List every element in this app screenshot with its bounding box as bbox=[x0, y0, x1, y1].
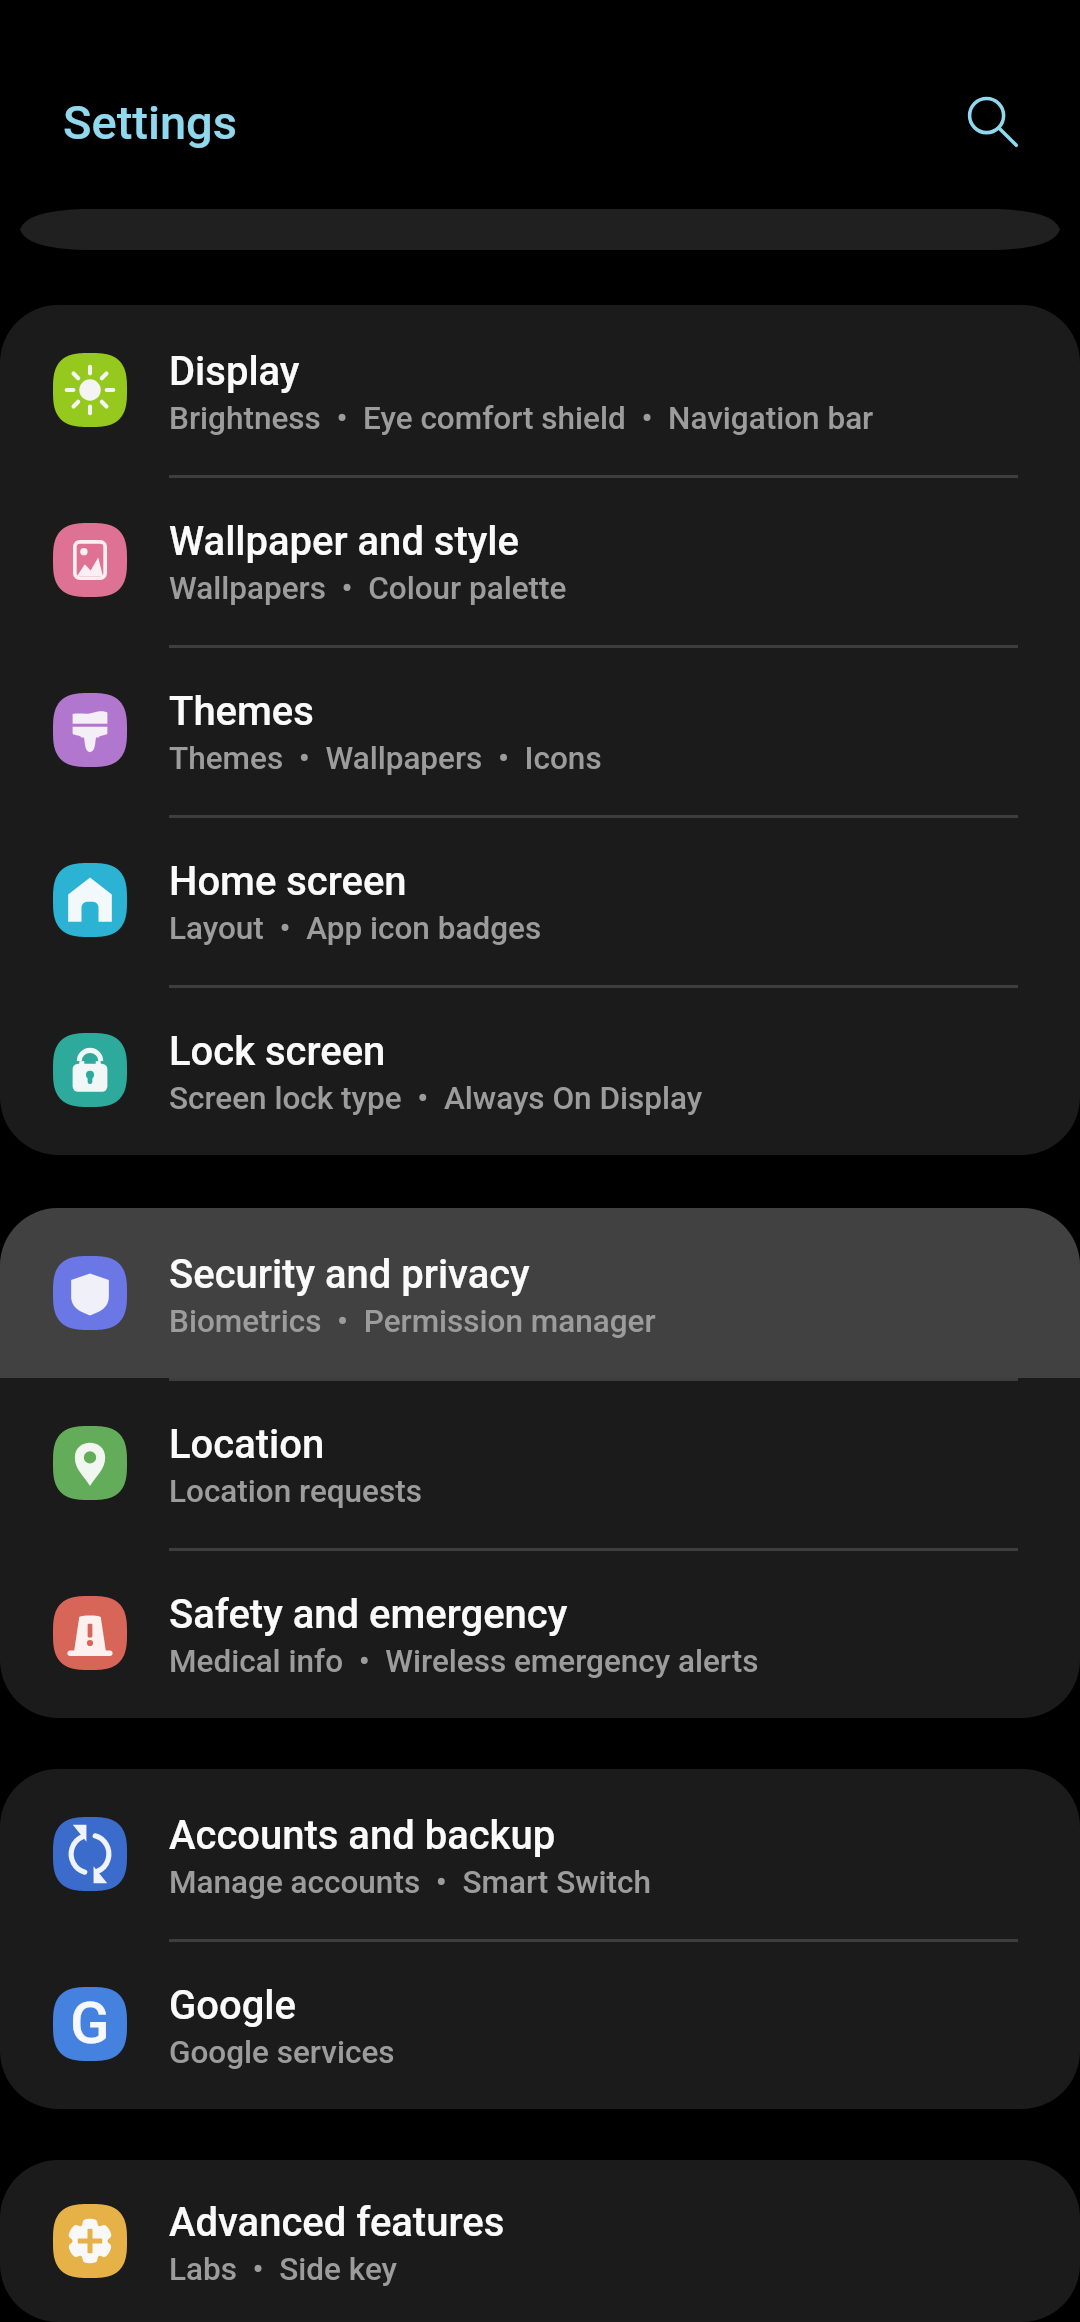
staticText: Security and privacy bbox=[169, 1251, 530, 1298]
button[interactable]: Display bbox=[0, 305, 1080, 475]
staticText: Safety and emergency bbox=[169, 1591, 568, 1638]
staticText: Brightness • Eye comfort shield • Naviga… bbox=[169, 400, 874, 437]
button[interactable] bbox=[0, 209, 1080, 250]
staticText: Medical info • Wireless emergency alerts bbox=[169, 1643, 759, 1680]
staticText: Themes bbox=[169, 688, 314, 735]
staticText: Home screen bbox=[169, 858, 407, 905]
button[interactable]: Search bbox=[944, 73, 1040, 169]
staticText: Accounts and backup bbox=[169, 1812, 556, 1859]
staticText: Manage accounts • Smart Switch bbox=[169, 1864, 652, 1901]
staticText: Google services bbox=[169, 2034, 395, 2071]
staticText: Lock screen bbox=[169, 1028, 386, 1075]
button[interactable]: Wallpaper and style bbox=[0, 475, 1080, 645]
button[interactable]: Home screen bbox=[0, 815, 1080, 985]
button[interactable]: Lock screen bbox=[0, 985, 1080, 1155]
staticText: G bbox=[70, 1989, 110, 2057]
button[interactable]: Safety and emergency bbox=[0, 1548, 1080, 1718]
staticText: Advanced features bbox=[169, 2199, 505, 2246]
staticText: Layout • App icon badges bbox=[169, 910, 542, 947]
staticText: Biometrics • Permission manager bbox=[169, 1303, 656, 1340]
staticText: Themes • Wallpapers • Icons bbox=[169, 740, 602, 777]
staticText: Display bbox=[169, 348, 300, 395]
staticText: Wallpapers • Colour palette bbox=[169, 570, 567, 607]
staticText: Wallpaper and style bbox=[169, 518, 519, 565]
staticText: Settings bbox=[63, 95, 237, 150]
staticText: Location requests bbox=[169, 1473, 422, 1510]
staticText: Screen lock type • Always On Display bbox=[169, 1080, 703, 1117]
button[interactable]: G bbox=[0, 1939, 1080, 2109]
button[interactable]: Location bbox=[0, 1378, 1080, 1548]
staticText: Labs • Side key bbox=[169, 2251, 398, 2288]
button[interactable]: Accounts and backup bbox=[0, 1769, 1080, 1939]
button[interactable]: Themes bbox=[0, 645, 1080, 815]
button[interactable]: Advanced features bbox=[0, 2160, 1080, 2322]
staticText: Location bbox=[169, 1421, 325, 1468]
staticText: Google bbox=[169, 1982, 296, 2029]
button[interactable]: Security and privacy bbox=[0, 1208, 1080, 1378]
